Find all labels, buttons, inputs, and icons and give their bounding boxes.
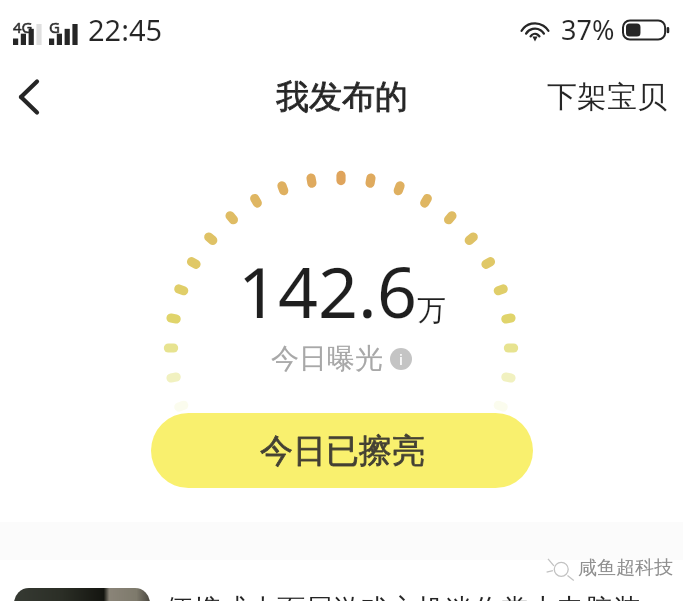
staticText: 万 (417, 292, 446, 329)
staticText: G (49, 17, 60, 37)
staticText: 22:45 (88, 10, 163, 49)
staticText: 便携式大面屏游戏主机迷你掌上电脑装 (165, 592, 641, 601)
button[interactable]: Info (390, 348, 412, 370)
staticText: 我发布的 (276, 76, 408, 118)
staticText: 4G (13, 17, 33, 37)
staticText: 我发布的 (276, 76, 408, 118)
staticText: 今日已擦亮 (260, 430, 425, 472)
button[interactable]: 下架宝贝 (539, 70, 675, 124)
button[interactable]: 便携式大面屏游戏主机迷你掌上电脑装 (0, 541, 683, 601)
staticText: i (399, 349, 403, 369)
staticText: 今日曝光 (271, 341, 383, 376)
staticText: 142.6 (238, 243, 417, 338)
staticText: 咸鱼超科技 (578, 556, 673, 580)
button[interactable]: 今日已擦亮 (151, 413, 533, 488)
staticText: 37% (561, 11, 615, 48)
staticText: 下架宝贝 (547, 78, 667, 116)
staticText: 今日已擦亮 (260, 430, 425, 472)
staticText: G (49, 17, 60, 37)
staticText: 4G (13, 17, 33, 37)
button[interactable]: Back (2, 71, 54, 123)
